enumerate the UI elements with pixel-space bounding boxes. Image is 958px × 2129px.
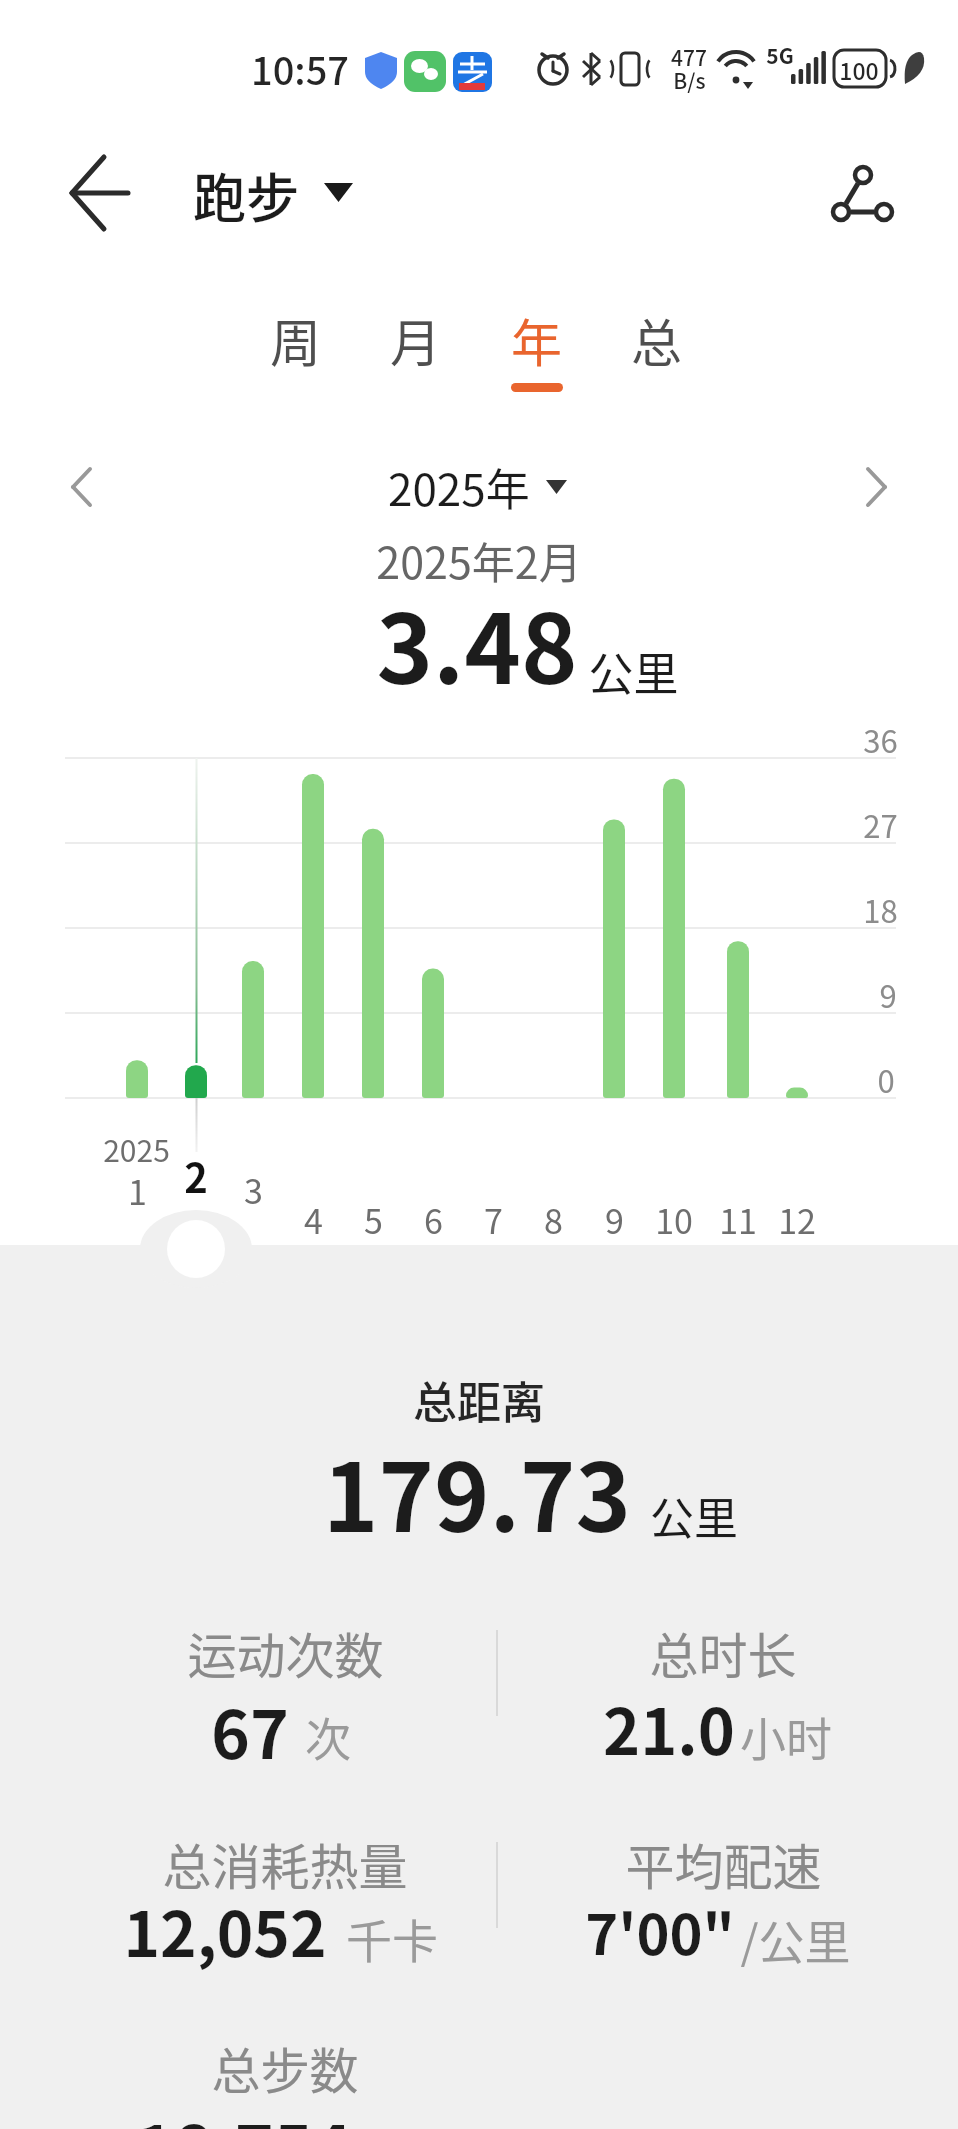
staticText: 8 [544,1195,563,1243]
staticText: 总步数 [211,2032,359,2102]
staticText: 2 [184,1147,208,1199]
button[interactable] [285,758,341,1198]
staticText: 平均配速 [625,1828,822,1898]
staticText: 9 [879,972,897,1014]
button[interactable]: 年 [482,295,592,385]
staticText: 18 [863,887,898,929]
staticText: 6 [424,1195,443,1243]
button[interactable] [168,758,224,1198]
staticText: 67 [211,1682,289,1772]
button[interactable] [769,758,825,1198]
staticText: 0 [877,1057,895,1099]
staticText: 179.73 [323,1423,631,1559]
staticText: 周 [270,303,322,377]
staticText: 运动次数 [187,1617,384,1687]
staticText: /公里 [740,1906,851,1973]
staticText: 11 [719,1195,757,1243]
button[interactable] [40,450,130,525]
staticText: 10:57 [251,41,349,96]
button[interactable]: 总 [602,295,712,385]
staticText: 跑步 [193,157,299,234]
staticText: 36 [863,717,898,759]
staticText: 2025 [103,1127,170,1170]
button[interactable] [815,145,920,245]
staticText: 月 [390,303,442,377]
button[interactable] [345,758,401,1198]
staticText: 477 [671,42,707,72]
staticText: 10 [655,1195,693,1243]
staticText: 3.48 [376,573,578,712]
staticText: 总 [631,303,683,377]
button[interactable] [710,758,766,1198]
staticText: 千卡 [346,1905,438,1972]
staticText: 总距离 [413,1368,545,1432]
staticText: 总时长 [649,1617,797,1687]
staticText: 公里 [650,1484,738,1548]
staticText: 12,052 [123,1885,327,1975]
staticText: 27 [863,802,898,844]
button[interactable]: 月 [361,295,471,385]
button[interactable] [830,450,920,525]
staticText: 7 [484,1195,503,1243]
button[interactable] [40,148,140,238]
button[interactable] [167,1220,225,1278]
staticText: 12 [778,1195,816,1243]
staticText: 年 [511,303,563,377]
button[interactable] [225,758,281,1198]
staticText: 总消耗热量 [162,1828,408,1898]
staticText: 4 [304,1195,323,1243]
staticText: 5G [766,40,794,70]
button[interactable]: 跑步 [175,150,370,240]
staticText: B/s [673,65,706,95]
button[interactable] [109,758,165,1198]
staticText: 次 [305,1703,351,1770]
staticText: 3 [244,1165,263,1213]
staticText: 18,754 [135,2097,352,2129]
staticText: 5 [364,1195,383,1243]
staticText: 100 [839,53,879,83]
staticText: 7'00" [585,1890,735,1971]
button[interactable]: 2025年 [370,452,580,522]
staticText: 2025年2月 [376,529,582,591]
button[interactable]: 周 [241,295,351,385]
button[interactable] [586,758,642,1198]
staticText: 1 [128,1166,147,1214]
staticText: 9 [605,1195,624,1243]
staticText: 21.0 [603,1682,735,1772]
button[interactable] [646,758,702,1198]
button[interactable] [405,758,461,1198]
staticText: 小时 [740,1703,832,1770]
staticText: 2025年 [388,455,530,519]
staticText: 公里 [588,639,679,704]
